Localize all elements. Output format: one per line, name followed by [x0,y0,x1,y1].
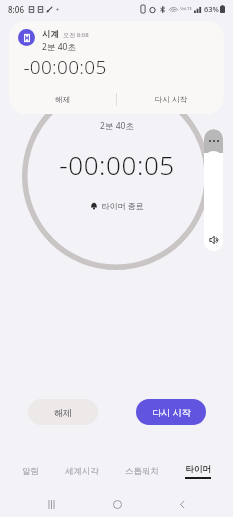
staticText: 스톱워치 [125,466,159,477]
staticText: 해제 [54,407,72,418]
button[interactable]: 세계시각 [61,460,103,482]
button[interactable]: Home [103,491,131,517]
other: Sound [209,235,219,245]
staticText: 다시 시작 [155,94,187,104]
button[interactable]: 스톱워치 [121,460,163,482]
staticText: 시계 [42,29,59,40]
button[interactable]: Volume [204,129,223,251]
staticText: -00:00:05 [59,147,175,182]
button[interactable]: 타이머 [181,460,215,482]
staticText: VoLTE [180,6,192,12]
button[interactable]: 해제 [28,399,98,425]
staticText: -00:00:05 [23,54,107,80]
staticText: 오전 8:08 [63,31,89,39]
staticText: 다시 시작 [152,406,191,418]
button[interactable]: Recent apps [37,491,65,517]
button[interactable]: 알림 [18,460,43,482]
button[interactable]: 다시 시작 [117,88,224,110]
button[interactable]: Back [168,491,196,517]
staticText: 2분 40초 [100,120,134,132]
staticText: 63% [204,4,219,14]
staticText: 타이머 종료 [101,200,144,211]
staticText: 8:06 [8,4,24,15]
staticText: 타이머 [185,464,211,475]
button[interactable]: More options [204,129,223,153]
staticText: 알림 [22,466,39,477]
button[interactable]: 다시 시작 [136,399,206,425]
button[interactable]: 시계 [9,21,224,114]
staticText: 해제 [55,95,70,104]
staticText: 2분 40초 [42,41,76,53]
staticText: 세계시각 [65,466,99,477]
button[interactable]: 해제 [9,88,116,110]
